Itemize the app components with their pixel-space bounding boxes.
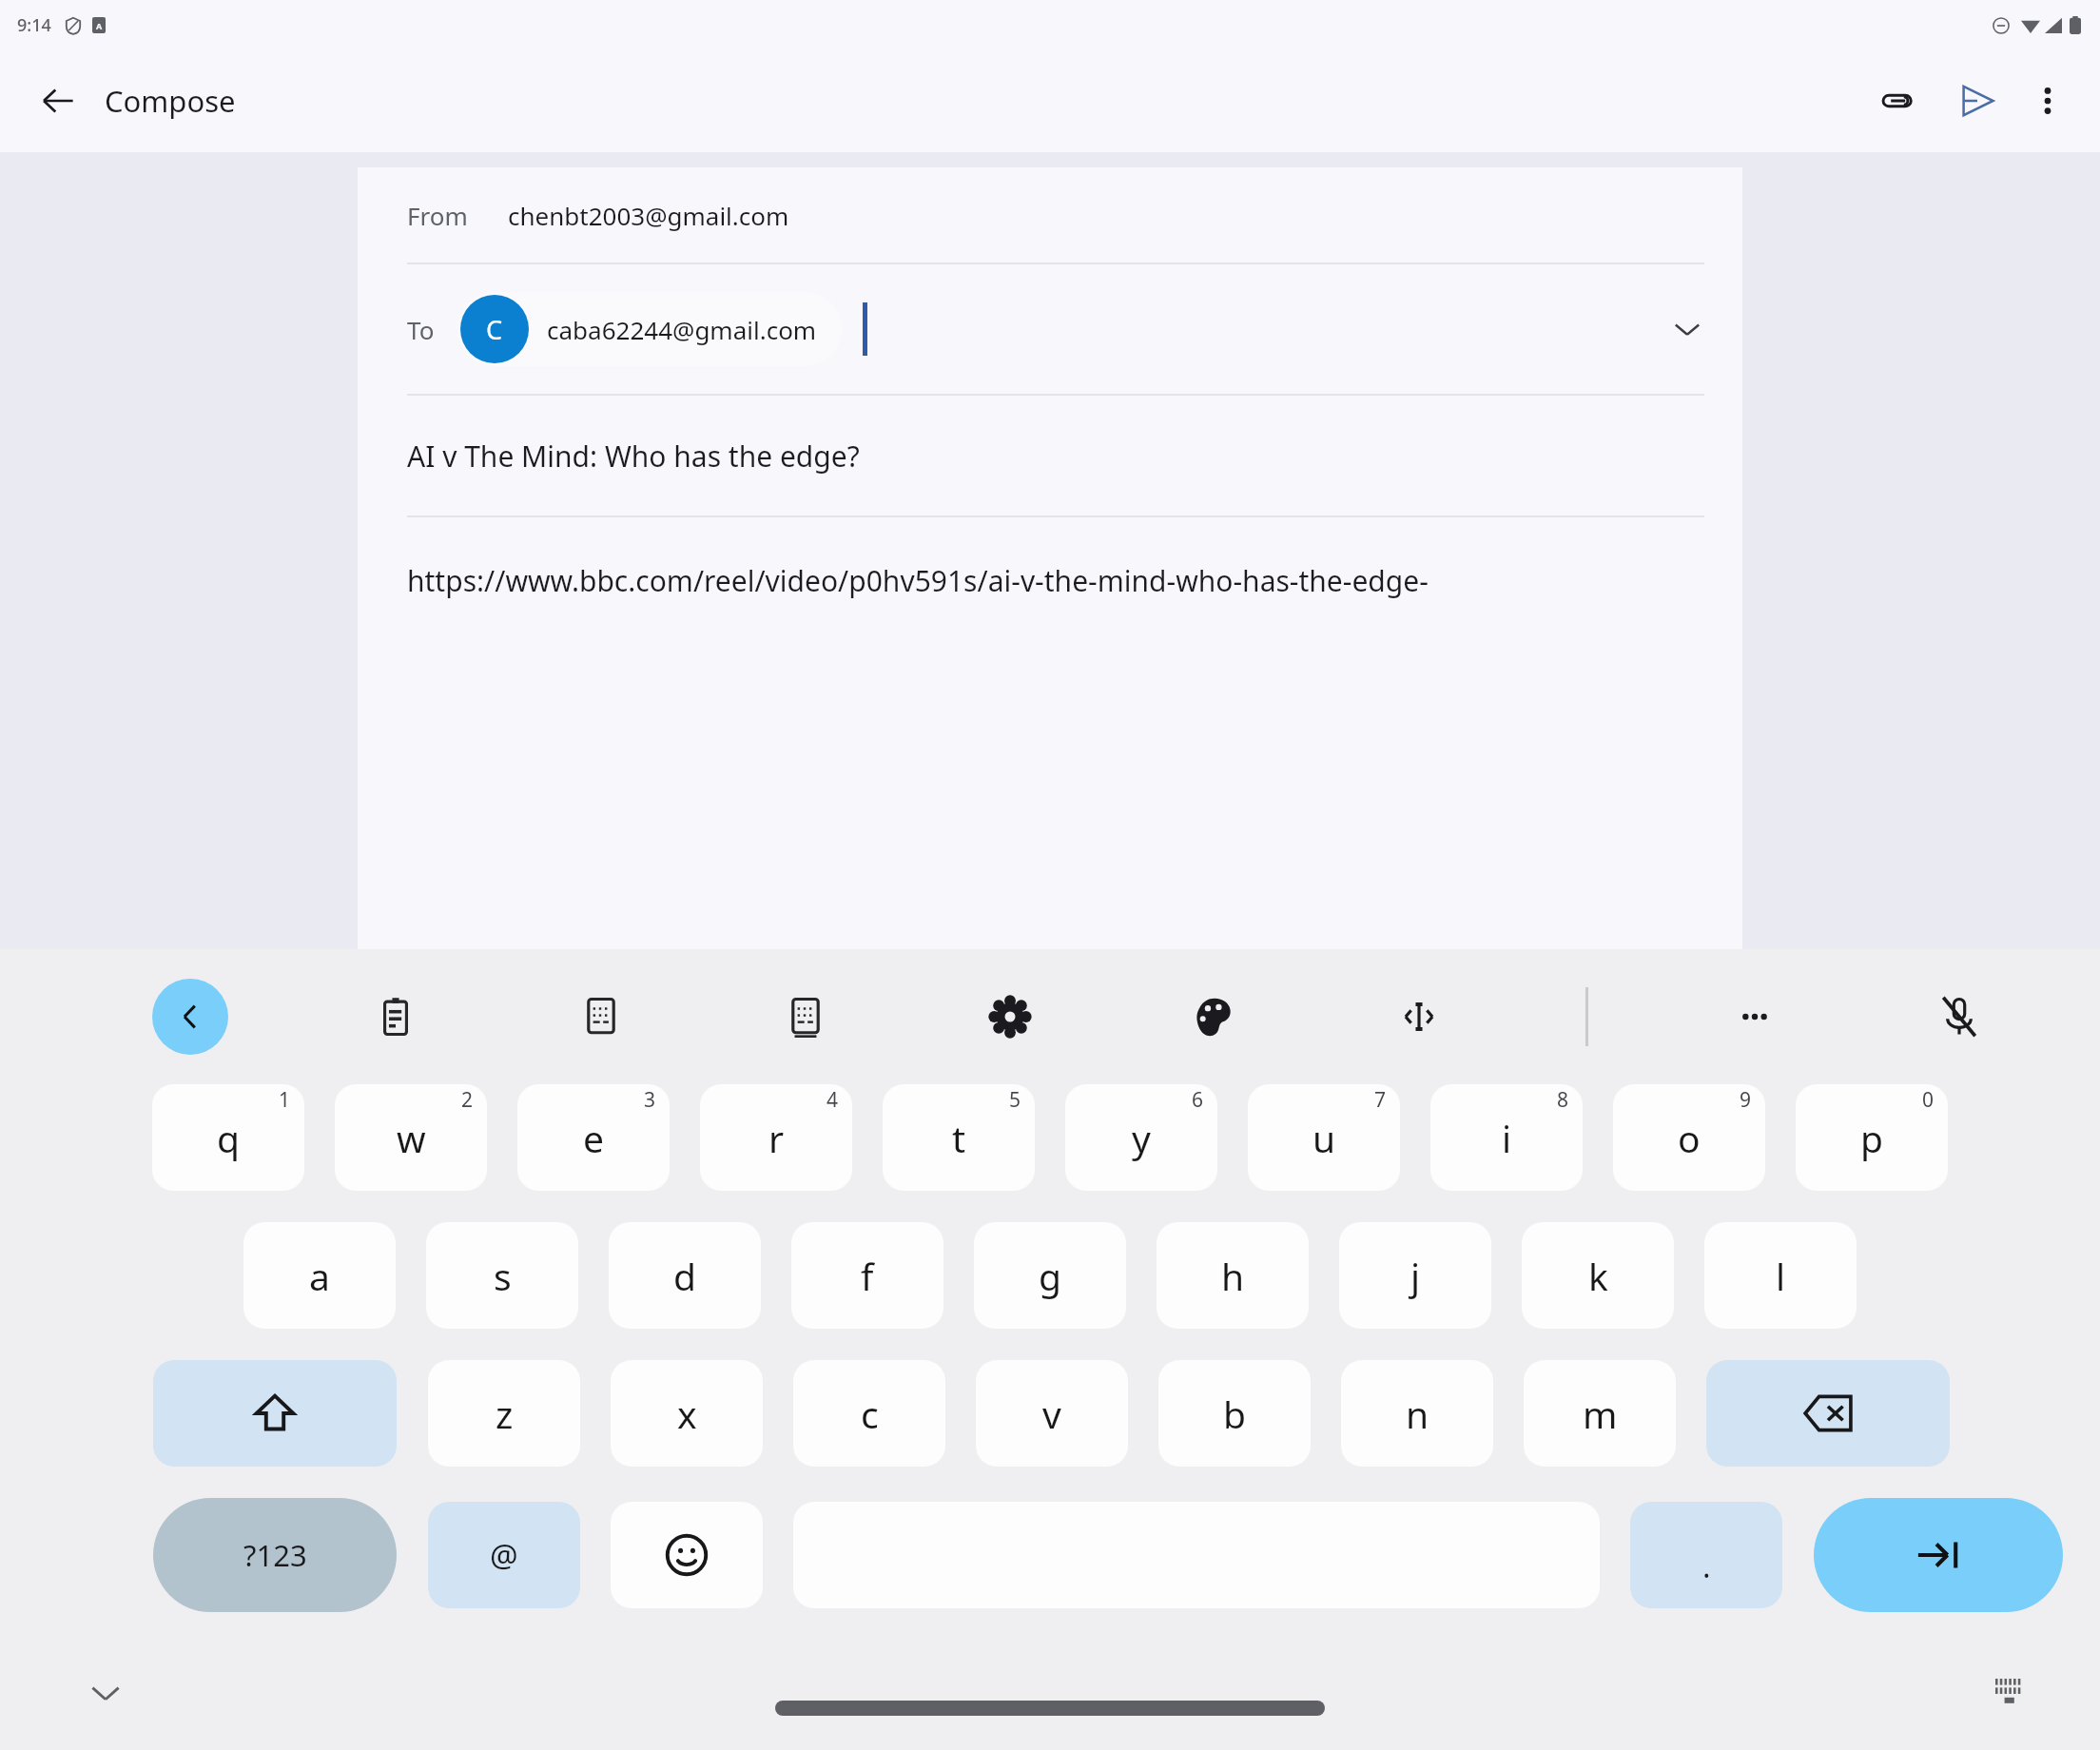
staticText: y <box>1132 1113 1151 1163</box>
button[interactable]: . <box>1630 1502 1782 1608</box>
staticText: b <box>1223 1389 1246 1439</box>
staticText: chenbt2003@gmail.com <box>508 199 789 232</box>
button[interactable]: h <box>1157 1222 1309 1329</box>
staticText: f <box>861 1251 874 1301</box>
staticText: o <box>1678 1113 1701 1163</box>
button[interactable]: Back <box>23 66 93 136</box>
button[interactable]: w <box>335 1084 487 1191</box>
staticText: k <box>1588 1251 1608 1301</box>
button[interactable]: b <box>1158 1360 1311 1467</box>
button[interactable]: q <box>152 1084 304 1191</box>
button[interactable]: To <box>358 264 1742 394</box>
button[interactable]: Stickers <box>563 979 639 1055</box>
button[interactable]: y <box>1065 1084 1217 1191</box>
staticText: r <box>768 1113 785 1163</box>
button[interactable]: t <box>883 1084 1035 1191</box>
staticText: 3 <box>644 1086 656 1114</box>
staticText: . <box>1702 1546 1711 1587</box>
button[interactable]: C <box>457 292 842 366</box>
button[interactable]: From <box>358 167 1742 262</box>
staticText: x <box>677 1389 697 1439</box>
staticText: j <box>1410 1251 1421 1301</box>
staticText: a <box>309 1251 330 1301</box>
staticText: 0 <box>1922 1086 1935 1114</box>
staticText: caba62244@gmail.com <box>547 313 817 346</box>
button[interactable]: p <box>1796 1084 1948 1191</box>
button[interactable]: Shift <box>153 1360 397 1467</box>
button[interactable]: n <box>1341 1360 1493 1467</box>
button[interactable]: x <box>611 1360 763 1467</box>
button[interactable]: c <box>793 1360 945 1467</box>
staticText: To <box>407 313 435 346</box>
button[interactable]: v <box>976 1360 1128 1467</box>
staticText: v <box>1042 1389 1061 1439</box>
button[interactable]: i <box>1430 1084 1583 1191</box>
button[interactable]: Emoji <box>611 1502 763 1608</box>
button[interactable]: f <box>791 1222 943 1329</box>
button[interactable]: k <box>1522 1222 1674 1329</box>
button[interactable]: @ <box>428 1502 580 1608</box>
button[interactable]: https://www.bbc.com/reel/video/p0hv591s/… <box>358 561 1742 600</box>
button[interactable]: Clipboard <box>358 979 434 1055</box>
staticText: i <box>1502 1113 1512 1163</box>
staticText: A <box>96 20 103 31</box>
staticText: d <box>673 1251 696 1301</box>
button[interactable]: e <box>517 1084 670 1191</box>
staticText: ?123 <box>243 1535 307 1575</box>
button[interactable]: Themes <box>1176 979 1253 1055</box>
button[interactable]: o <box>1613 1084 1765 1191</box>
staticText: 7 <box>1374 1086 1387 1114</box>
staticText: z <box>496 1389 514 1439</box>
staticText: s <box>494 1251 512 1301</box>
button[interactable]: u <box>1248 1084 1400 1191</box>
staticText: h <box>1221 1251 1245 1301</box>
button[interactable]: Next <box>1814 1498 2063 1612</box>
staticText: l <box>1776 1251 1786 1301</box>
staticText: @ <box>490 1534 518 1577</box>
button[interactable]: Attach file <box>1862 66 1933 136</box>
button[interactable]: d <box>609 1222 761 1329</box>
button[interactable]: Previous <box>152 979 228 1055</box>
staticText: t <box>952 1113 966 1163</box>
button[interactable]: a <box>243 1222 396 1329</box>
button[interactable]: More <box>1717 979 1793 1055</box>
button[interactable]: More options <box>2012 66 2083 136</box>
staticText: e <box>583 1113 604 1163</box>
staticText: 8 <box>1557 1086 1569 1114</box>
staticText: p <box>1860 1113 1883 1163</box>
staticText: g <box>1039 1251 1061 1301</box>
button[interactable]: l <box>1704 1222 1857 1329</box>
button[interactable]: AI v The Mind: Who has the edge? <box>358 396 1742 515</box>
button[interactable]: ?123 <box>153 1498 397 1612</box>
button[interactable]: Voice input off <box>1921 979 1997 1055</box>
button[interactable]: Text editing <box>1381 979 1457 1055</box>
button[interactable]: s <box>426 1222 578 1329</box>
staticText: 5 <box>1009 1086 1021 1114</box>
button[interactable]: Send <box>1942 66 2012 136</box>
button[interactable]: Settings <box>972 979 1048 1055</box>
button[interactable]: g <box>974 1222 1126 1329</box>
staticText: From <box>407 199 468 232</box>
staticText: n <box>1406 1389 1429 1439</box>
button[interactable]: Expand recipients <box>1657 299 1718 360</box>
staticText: 2 <box>461 1086 474 1114</box>
staticText: m <box>1583 1389 1618 1439</box>
staticText: 9:14 <box>17 13 51 37</box>
staticText: 9 <box>1740 1086 1752 1114</box>
button[interactable]: j <box>1339 1222 1491 1329</box>
button[interactable]: m <box>1524 1360 1676 1467</box>
button[interactable]: Backspace <box>1706 1360 1950 1467</box>
staticText: u <box>1312 1113 1336 1163</box>
staticText: https://www.bbc.com/reel/video/p0hv591s/… <box>407 561 1429 600</box>
staticText: c <box>861 1389 879 1439</box>
button[interactable]: One handed mode <box>768 979 844 1055</box>
staticText: q <box>217 1113 240 1163</box>
button[interactable]: z <box>428 1360 580 1467</box>
button[interactable]: Change keyboard <box>1988 1671 2032 1715</box>
button[interactable]: r <box>700 1084 852 1191</box>
staticText: w <box>397 1113 426 1163</box>
staticText: Compose <box>105 81 236 121</box>
staticText: C <box>486 312 503 347</box>
button[interactable]: Hide keyboard <box>78 1665 133 1721</box>
